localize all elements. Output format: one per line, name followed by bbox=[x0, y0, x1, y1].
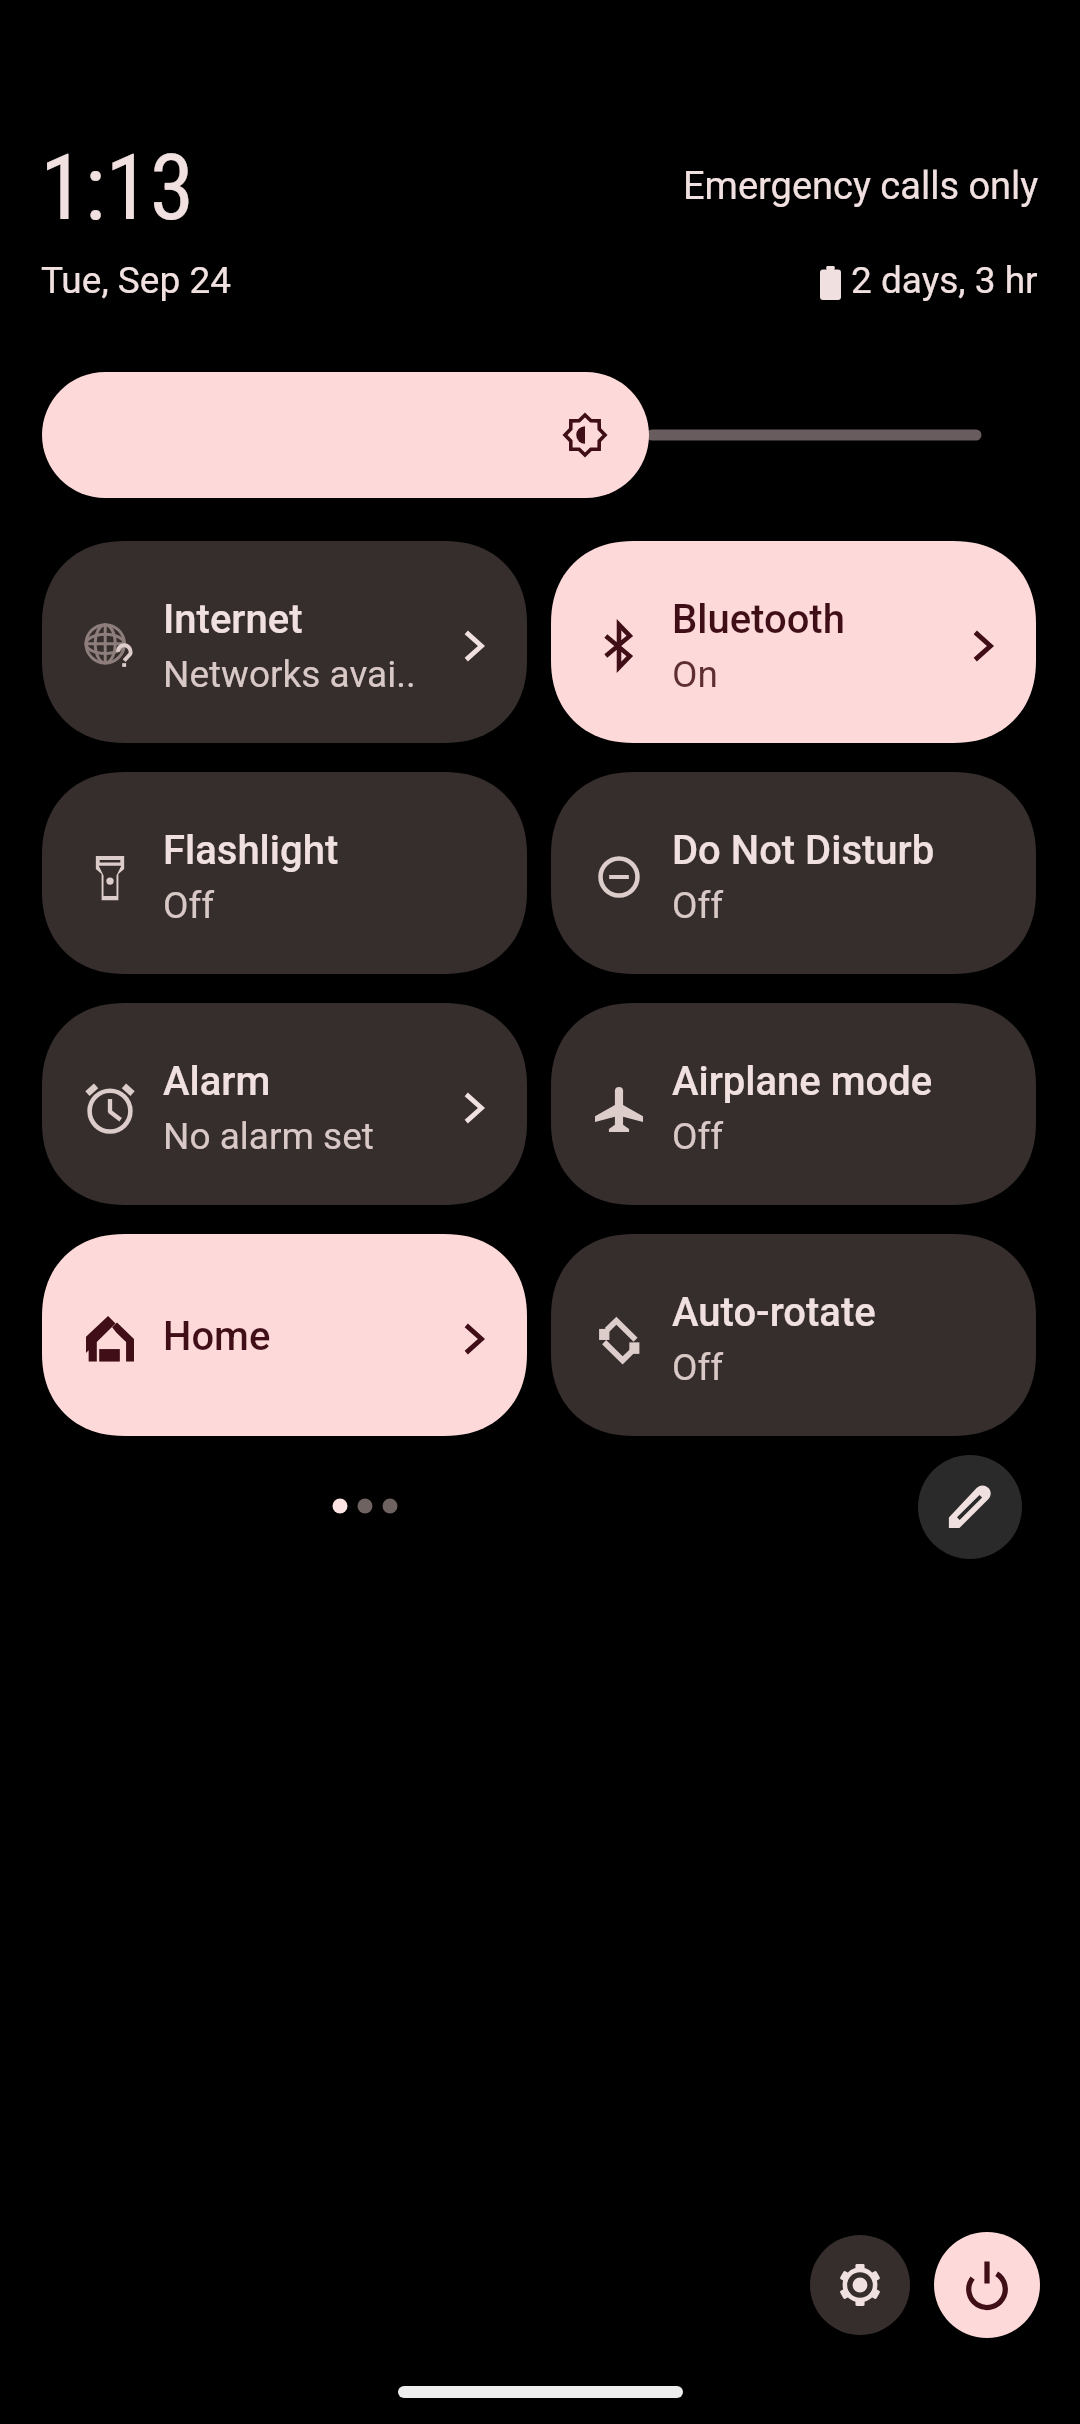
staticText: Off bbox=[672, 1115, 724, 1158]
button[interactable]: Flashlight bbox=[42, 772, 527, 974]
button[interactable]: Auto-rotate bbox=[551, 1234, 1036, 1436]
button[interactable]: Edit tiles bbox=[918, 1455, 1022, 1559]
staticText: Alarm bbox=[163, 1058, 271, 1105]
staticText: Flashlight bbox=[163, 827, 339, 874]
staticText: Bluetooth bbox=[672, 596, 845, 643]
staticText: Tue, Sep 24 bbox=[41, 259, 231, 302]
button[interactable]: Do Not Disturb bbox=[551, 772, 1036, 974]
button[interactable]: Power bbox=[934, 2232, 1040, 2338]
staticText: On bbox=[672, 653, 718, 696]
staticText: Internet bbox=[163, 596, 303, 643]
button[interactable]: Alarm bbox=[42, 1003, 527, 1205]
button[interactable]: Home bbox=[42, 1234, 527, 1436]
button[interactable]: Brightness bbox=[42, 372, 649, 498]
button[interactable]: Bluetooth bbox=[551, 541, 1036, 743]
staticText: No alarm set bbox=[163, 1115, 374, 1158]
staticText: 1:13 bbox=[40, 136, 195, 241]
staticText: Emergency calls only bbox=[683, 164, 1039, 209]
staticText: Off bbox=[672, 1346, 724, 1389]
staticText: Airplane mode bbox=[672, 1058, 933, 1105]
button[interactable]: Airplane mode bbox=[551, 1003, 1036, 1205]
staticText: Auto-rotate bbox=[672, 1289, 876, 1336]
staticText: 2 days, 3 hr bbox=[851, 259, 1038, 302]
staticText: Home bbox=[163, 1313, 271, 1360]
staticText: Off bbox=[163, 884, 215, 927]
staticText: Networks avai.. bbox=[163, 653, 416, 696]
button[interactable]: Settings bbox=[810, 2235, 910, 2335]
button[interactable]: Internet bbox=[42, 541, 527, 743]
staticText: Do Not Disturb bbox=[672, 827, 935, 874]
staticText: Off bbox=[672, 884, 724, 927]
